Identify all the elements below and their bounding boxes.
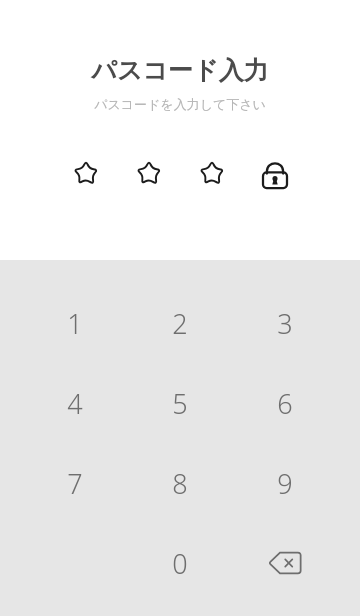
button[interactable]: 0 (127, 523, 232, 603)
button[interactable]: 9 (232, 443, 337, 523)
other: Digit 2 entered (117, 153, 180, 193)
staticText: 5 (172, 385, 188, 422)
other: Digit 3 entered (180, 153, 243, 193)
staticText: 9 (277, 465, 293, 502)
staticText: 1 (67, 305, 83, 342)
staticText: 0 (172, 545, 188, 582)
button[interactable]: 2 (127, 283, 232, 363)
button[interactable]: 3 (232, 283, 337, 363)
button[interactable]: 7 (22, 443, 127, 523)
staticText: 3 (277, 305, 293, 342)
button[interactable]: 1 (22, 283, 127, 363)
other: Locked (243, 153, 306, 193)
staticText: 8 (172, 465, 188, 502)
staticText: パスコード入力 (91, 55, 269, 86)
staticText: 6 (277, 385, 293, 422)
staticText: 4 (67, 385, 83, 422)
button[interactable]: 5 (127, 363, 232, 443)
other: Digit 1 entered (54, 153, 117, 193)
button[interactable]: 6 (232, 363, 337, 443)
button[interactable]: 8 (127, 443, 232, 523)
button[interactable]: 4 (22, 363, 127, 443)
staticText: パスコードを入力して下さい (94, 96, 266, 112)
staticText: 7 (67, 465, 83, 502)
staticText: 2 (172, 305, 188, 342)
button[interactable]: Delete (232, 523, 337, 603)
